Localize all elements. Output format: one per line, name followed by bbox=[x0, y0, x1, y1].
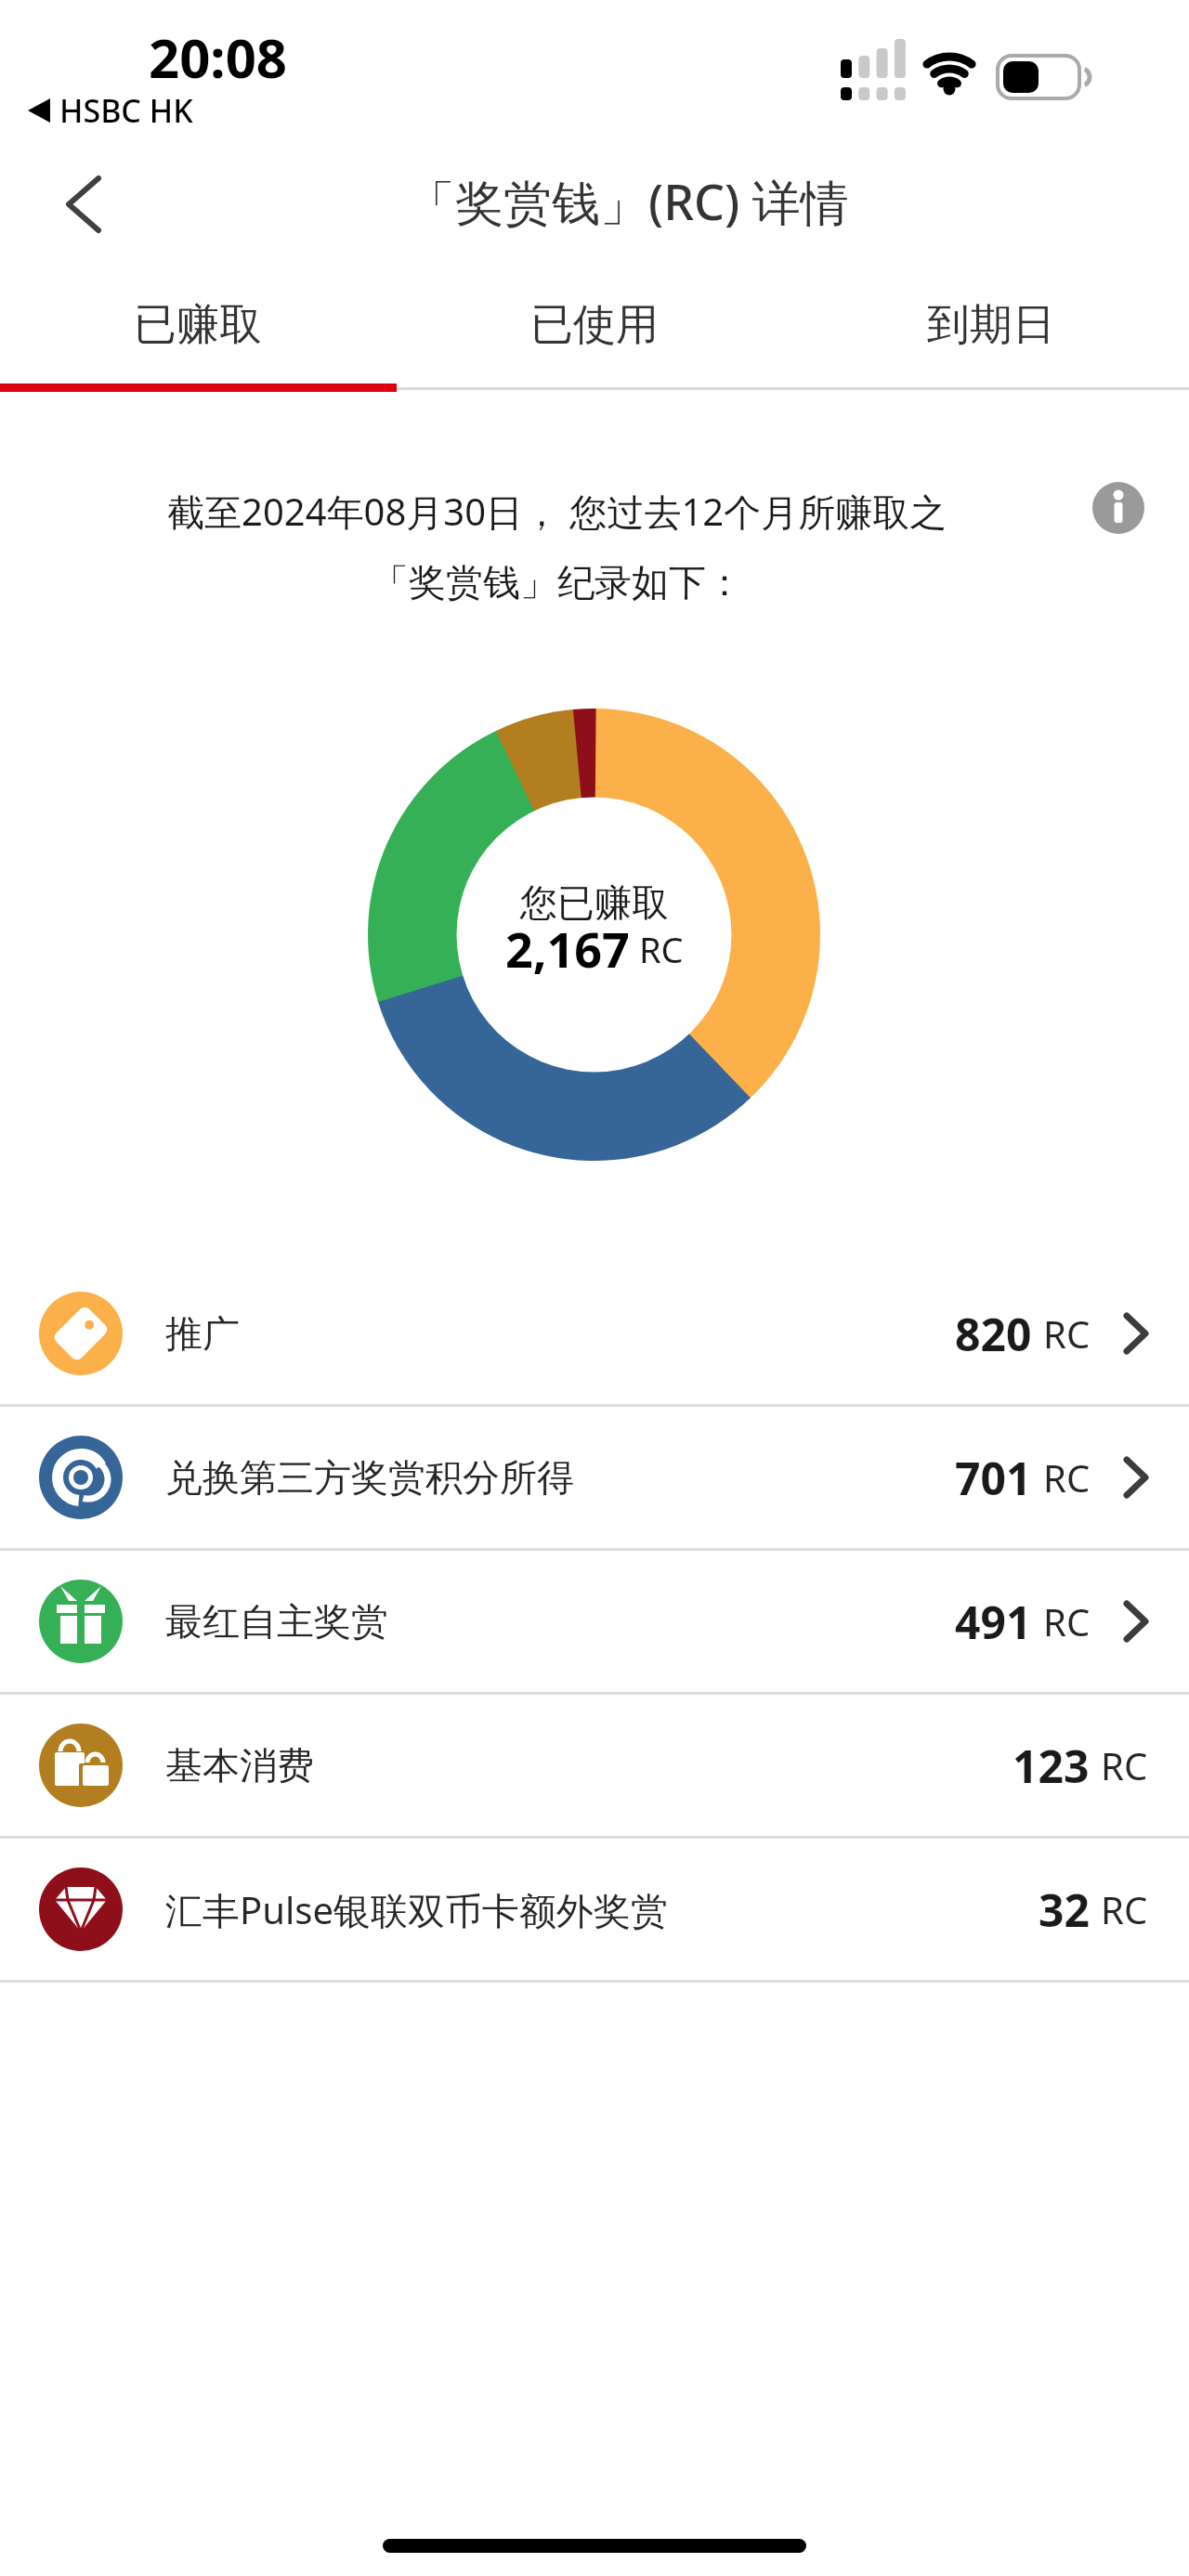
staticText: 已使用 bbox=[530, 298, 659, 352]
staticText: RC bbox=[1043, 1308, 1091, 1359]
staticText: RC bbox=[630, 925, 684, 973]
staticText: 推广 bbox=[165, 1310, 240, 1357]
button[interactable]: 已使用 bbox=[396, 279, 792, 371]
button[interactable]: 最红自主奖赏 bbox=[0, 1551, 1189, 1692]
staticText: RC bbox=[1101, 1740, 1148, 1790]
button[interactable]: 到期日 bbox=[792, 279, 1189, 371]
staticText: 「奖赏钱」纪录如下： bbox=[372, 559, 743, 605]
staticText: 截至2024年08月30日， 您过去12个月所赚取之 bbox=[167, 486, 947, 537]
button[interactable] bbox=[1092, 482, 1144, 534]
staticText: 兑换第三方奖赏积分所得 bbox=[165, 1454, 574, 1501]
staticText: 32 bbox=[1039, 1880, 1090, 1940]
staticText: 123 bbox=[1013, 1736, 1090, 1796]
staticText: HSBC HK bbox=[59, 89, 193, 132]
staticText: 820 bbox=[955, 1304, 1032, 1364]
staticText: RC bbox=[1043, 1596, 1091, 1646]
button[interactable]: 汇丰Pulse银联双币卡额外奖赏 bbox=[0, 1839, 1189, 1980]
button[interactable] bbox=[45, 165, 123, 243]
button[interactable]: 兑换第三方奖赏积分所得 bbox=[0, 1407, 1189, 1548]
staticText: 701 bbox=[955, 1448, 1032, 1508]
staticText: 您已赚取 bbox=[520, 879, 669, 926]
staticText: RC bbox=[1101, 1884, 1148, 1934]
button[interactable]: 已赚取 bbox=[0, 279, 396, 371]
staticText: 已赚取 bbox=[134, 298, 262, 352]
button[interactable]: 基本消费 bbox=[0, 1695, 1189, 1836]
staticText: RC bbox=[1043, 1452, 1091, 1503]
staticText: 汇丰Pulse银联双币卡额外奖赏 bbox=[165, 1884, 668, 1935]
staticText: 到期日 bbox=[927, 298, 1055, 352]
staticText: 基本消费 bbox=[165, 1742, 314, 1789]
staticText: 最红自主奖赏 bbox=[165, 1598, 388, 1645]
button[interactable]: 推广 bbox=[0, 1263, 1189, 1404]
staticText: 「奖赏钱」(RC) 详情 bbox=[407, 168, 849, 234]
staticText: 491 bbox=[955, 1592, 1032, 1652]
staticText: 20:08 bbox=[149, 20, 288, 94]
staticText: 2,167 bbox=[505, 916, 630, 982]
